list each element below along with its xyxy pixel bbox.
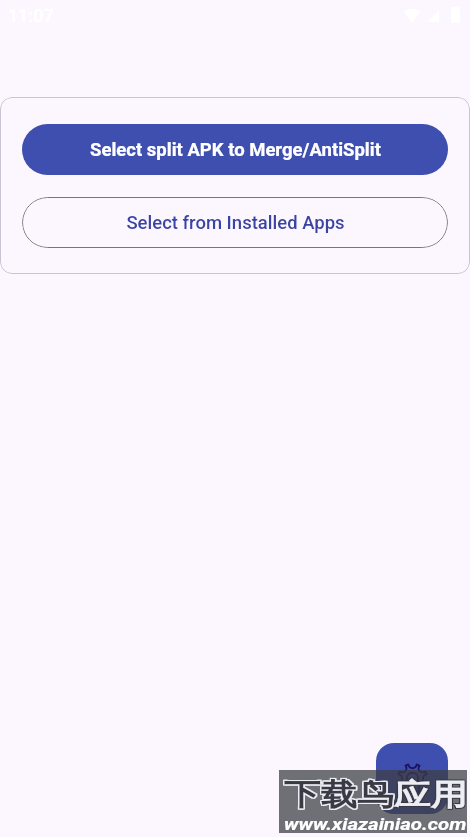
staticText: Select split APK to Merge/AntiSplit [90,139,381,161]
staticText: 下载鸟应用 [285,776,468,814]
staticText: 下载鸟应用 [285,775,468,813]
staticText: 下载鸟应用 [283,775,466,813]
staticText: Select from Installed Apps [126,212,345,234]
staticText: 下载鸟应用 [283,776,466,814]
button[interactable]: Select split APK to Merge/AntiSplit [22,124,448,175]
staticText: 下载鸟应用 [284,777,467,815]
button[interactable]: Settings [376,743,448,814]
button[interactable]: Select from Installed Apps [22,197,448,248]
staticText: 下载鸟应用 [284,776,467,814]
staticText: 下载鸟应用 [285,777,468,815]
staticText: 下载鸟应用 [284,775,467,813]
staticText: www.xiazainiao.com [284,814,466,834]
staticText: 下载鸟应用 [283,777,466,815]
staticText: 11:07 [8,5,54,26]
